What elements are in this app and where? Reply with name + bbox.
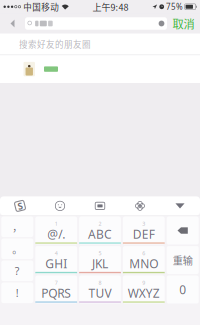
staticText: 重输 [173, 253, 193, 267]
staticText: DEF [133, 226, 155, 242]
staticText: 3 [142, 220, 145, 227]
staticText: @/. [47, 226, 65, 242]
staticText: 1 [55, 220, 58, 227]
button[interactable]: 5 [78, 245, 122, 275]
button[interactable]: 9 [122, 275, 166, 304]
button[interactable]: ! [0, 282, 34, 304]
button[interactable]: 6 [122, 245, 166, 275]
staticText: 2 [98, 220, 101, 227]
button[interactable]: ， [0, 216, 34, 238]
staticText: 搜索好友的朋友圈 [19, 38, 91, 50]
button[interactable]: ? [0, 260, 34, 282]
button[interactable]: 4 [34, 245, 78, 275]
staticText: ! [16, 286, 19, 300]
button[interactable]: 搜索好友的朋友圈 [0, 33, 200, 55]
staticText: 7 [55, 279, 58, 286]
button[interactable]: 0 [166, 275, 200, 304]
staticText: 上午9:48 [92, 0, 128, 13]
staticText: ? [15, 264, 20, 278]
button[interactable]: Hide keyboard [160, 196, 200, 215]
button[interactable]: Delete [166, 216, 200, 245]
button[interactable]: 8 [78, 275, 122, 304]
staticText: 75% [166, 1, 183, 12]
staticText: S [17, 200, 22, 212]
button[interactable]: 2 [78, 216, 122, 245]
staticText: TUV [88, 285, 111, 301]
staticText: 中国移动 [23, 1, 59, 13]
staticText: ABC [88, 226, 112, 242]
staticText: MNO [129, 255, 158, 271]
button[interactable]: 3 [122, 216, 166, 245]
button[interactable] [0, 55, 200, 83]
button[interactable]: 1 [34, 216, 78, 245]
button[interactable]: Switch keyboard [80, 196, 120, 215]
button[interactable]: 重输 [166, 245, 200, 275]
button[interactable]: 。 [0, 238, 34, 260]
staticText: 0 [179, 282, 186, 297]
button[interactable]: 7 [34, 275, 78, 304]
button[interactable]: Clear text [156, 17, 167, 30]
staticText: JKL [92, 255, 108, 271]
staticText: 。 [12, 242, 22, 256]
button[interactable]: Back [0, 13, 25, 33]
staticText: WXYZ [128, 285, 160, 301]
staticText: 6 [142, 250, 145, 257]
staticText: 取消 [172, 15, 194, 32]
staticText: ， [12, 220, 22, 234]
button[interactable]: More tools [120, 196, 160, 215]
staticText: 8 [98, 279, 101, 286]
staticText: 9 [142, 279, 145, 286]
button[interactable]: Sogou input settings [0, 196, 40, 215]
button[interactable]: 取消 [167, 13, 200, 33]
staticText: 5 [98, 250, 101, 257]
staticText: GHI [45, 255, 67, 271]
staticText: 4 [55, 250, 58, 257]
button[interactable]: Emoji [40, 196, 80, 215]
staticText: PQRS [41, 285, 71, 301]
